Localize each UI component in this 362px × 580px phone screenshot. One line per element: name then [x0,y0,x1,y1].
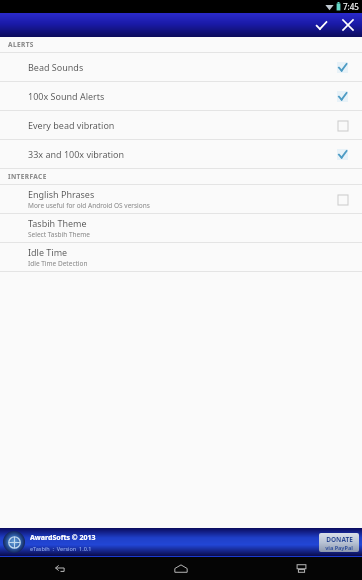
staticText: 33x and 100x vibration [28,148,337,160]
button[interactable]: Checked [337,149,348,160]
button[interactable]: Recent apps [241,556,362,580]
staticText: 100x Sound Alerts [28,90,337,102]
staticText: via PayPal [325,544,353,551]
staticText: INTERFACE [8,172,47,181]
button[interactable]: 33x and 100x vibration [0,140,362,169]
button[interactable]: Cancel [334,13,362,37]
button[interactable]: Back [0,556,120,580]
staticText: Idle Time [28,246,68,258]
button[interactable]: Every bead vibration [0,111,362,140]
staticText: Tasbih Theme [28,217,87,229]
staticText: eTasbih : Version 1.0.1 [30,545,92,552]
button[interactable]: Unchecked [337,120,348,131]
button[interactable]: English Phrases [0,185,362,214]
button[interactable]: Bead Sounds [0,53,362,82]
staticText: 7:45 [343,1,359,12]
staticText: More useful for old Android OS versions [28,201,150,210]
button[interactable]: Home [120,556,241,580]
button[interactable]: DONATE [319,533,359,552]
staticText: DONATE [326,535,353,544]
button[interactable]: Checked [337,62,348,73]
staticText: Idle Time Detection [28,259,88,268]
button[interactable]: Unchecked [337,194,348,205]
staticText: ALERTS [8,40,34,49]
staticText: Select Tasbih Theme [28,230,91,239]
staticText: Every bead vibration [28,119,337,131]
staticText: AwardSofts © 2013 [30,533,96,543]
staticText: English Phrases [28,188,95,200]
staticText: Bead Sounds [28,61,337,73]
button[interactable]: Done [308,13,334,37]
button[interactable]: 100x Sound Alerts [0,82,362,111]
button[interactable]: Tasbih Theme [0,214,362,243]
button[interactable]: Checked [337,91,348,102]
button[interactable]: Idle Time [0,243,362,272]
